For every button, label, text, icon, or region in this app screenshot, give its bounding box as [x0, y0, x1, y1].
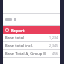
- staticText: Base total incl. columns: [5, 43, 49, 48]
- staticText: 1,234: [49, 35, 58, 40]
- button[interactable]: Base total: [3, 34, 60, 41]
- staticText: 2,345: [49, 43, 58, 48]
- staticText: Report: [11, 28, 25, 33]
- button[interactable]: [3, 14, 60, 25]
- button[interactable]: Base Total A, Group B: [3, 50, 60, 57]
- staticText: Base total: [5, 35, 49, 40]
- other: Section icon: [5, 28, 9, 32]
- button[interactable]: Section icon: [3, 26, 60, 34]
- staticText: 456: [51, 51, 58, 56]
- staticText: Base Total A, Group B: [5, 51, 51, 56]
- button[interactable]: Base total incl. columns: [3, 42, 60, 49]
